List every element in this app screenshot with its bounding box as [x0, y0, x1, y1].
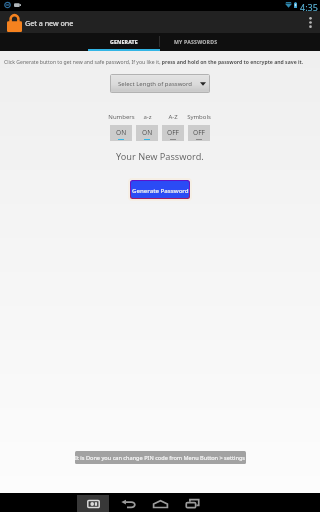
button[interactable]: Home [148, 495, 172, 512]
staticText: It is Done you can change PIN code from … [75, 454, 246, 462]
staticText: Generate Password [132, 186, 189, 194]
button[interactable]: Generate Password [131, 181, 189, 198]
staticText: Get a new one [25, 18, 74, 28]
button[interactable]: Select Length of password [110, 74, 210, 93]
staticText: Your New Password. [116, 150, 204, 163]
button[interactable]: Back [116, 495, 140, 512]
staticText: Symbols [187, 113, 211, 121]
button[interactable]: OFF [188, 125, 210, 141]
button[interactable]: ON [110, 125, 132, 141]
staticText: Click Generate button to get new and saf… [4, 59, 318, 66]
button[interactable]: GENERATE [88, 33, 160, 51]
button[interactable]: Recent apps [180, 495, 204, 512]
button[interactable]: More options [300, 11, 320, 33]
button[interactable]: Screenshot [77, 495, 109, 512]
staticText: OFF [193, 128, 205, 137]
staticText: 4:35 [300, 1, 318, 11]
staticText: Select Length of password [118, 80, 193, 88]
button[interactable]: MY PASSWORDS [160, 33, 232, 51]
staticText: GENERATE [110, 38, 138, 45]
staticText: Numbers [108, 113, 135, 121]
button[interactable]: ON [136, 125, 158, 141]
staticText: MY PASSWORDS [174, 38, 218, 45]
staticText: ON [142, 128, 153, 137]
button[interactable]: OFF [162, 125, 184, 141]
staticText: A-Z [168, 113, 178, 121]
staticText: a-z [143, 113, 152, 121]
staticText: ON [116, 128, 127, 137]
staticText: OFF [167, 128, 179, 137]
